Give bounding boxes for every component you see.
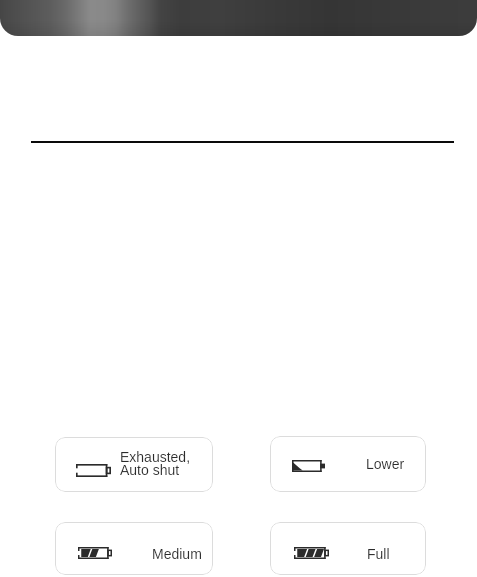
staticText: Medium	[152, 546, 202, 562]
other: Battery exhausted	[76, 464, 111, 477]
button[interactable]: Battery low	[270, 436, 426, 492]
staticText: Exhausted, Auto shut	[120, 449, 191, 478]
other: Battery low	[292, 460, 325, 472]
other: Battery medium	[78, 547, 112, 559]
button[interactable]: Battery exhausted	[55, 437, 213, 492]
staticText: Lower	[366, 456, 405, 472]
button[interactable]: App bar	[0, 0, 477, 36]
other: Battery full	[294, 547, 329, 559]
button[interactable]: Battery medium	[55, 522, 213, 575]
staticText: Full	[367, 546, 390, 562]
button[interactable]: Battery full	[270, 522, 426, 575]
